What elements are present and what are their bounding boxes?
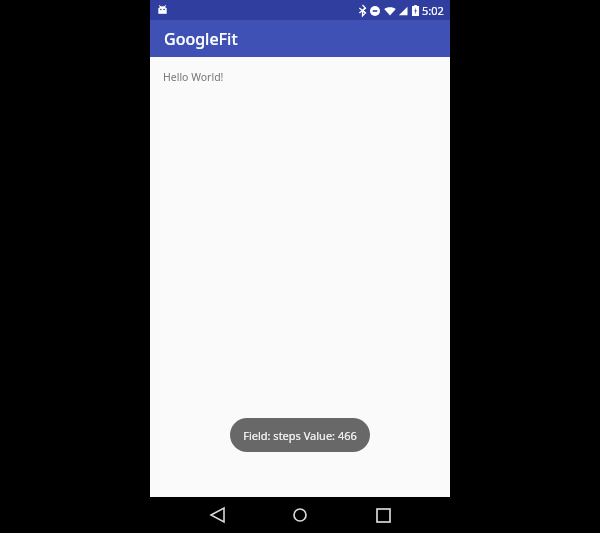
- staticText: 5:02: [422, 3, 444, 18]
- button[interactable]: Field: steps Value: 466: [230, 418, 370, 452]
- button[interactable]: Home: [283, 498, 317, 532]
- staticText: Hello World!: [163, 70, 224, 84]
- button[interactable]: Back: [200, 498, 234, 532]
- staticText: GoogleFit: [164, 28, 238, 50]
- staticText: Field: steps Value: 466: [243, 428, 357, 443]
- button[interactable]: Recent apps: [366, 498, 400, 532]
